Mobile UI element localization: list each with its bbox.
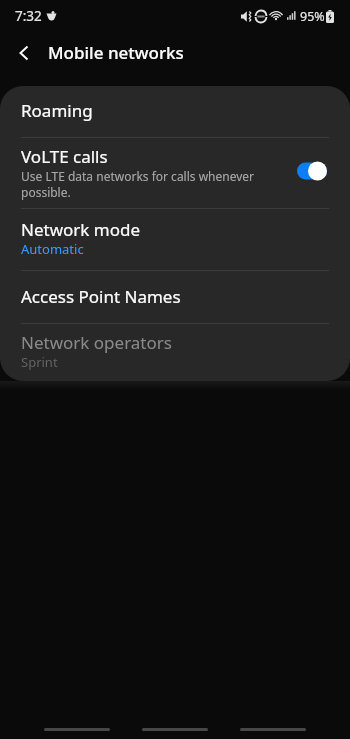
staticText: Sprint (21, 353, 58, 371)
staticText: VoLTE calls (21, 145, 108, 168)
button[interactable] (44, 728, 110, 731)
button[interactable]: Network operators (0, 324, 350, 381)
button[interactable] (142, 728, 208, 731)
button[interactable]: Access Point Names (0, 271, 350, 323)
staticText: 7:32 (15, 7, 42, 25)
staticText: Network mode (21, 218, 141, 241)
staticText: possible. (21, 184, 71, 200)
staticText: Use LTE data networks for calls whenever (21, 168, 255, 184)
button[interactable] (240, 728, 306, 731)
staticText: Roaming (21, 99, 93, 122)
button[interactable]: Roaming (0, 86, 350, 137)
button[interactable]: Network mode (0, 209, 350, 270)
button[interactable] (297, 161, 329, 181)
staticText: 95% (300, 8, 325, 25)
button[interactable]: VoLTE calls (0, 138, 350, 208)
staticText: Network operators (21, 331, 172, 354)
staticText: Mobile networks (48, 41, 184, 64)
button[interactable] (8, 35, 42, 71)
staticText: Access Point Names (21, 285, 181, 308)
staticText: Automatic (21, 240, 84, 258)
